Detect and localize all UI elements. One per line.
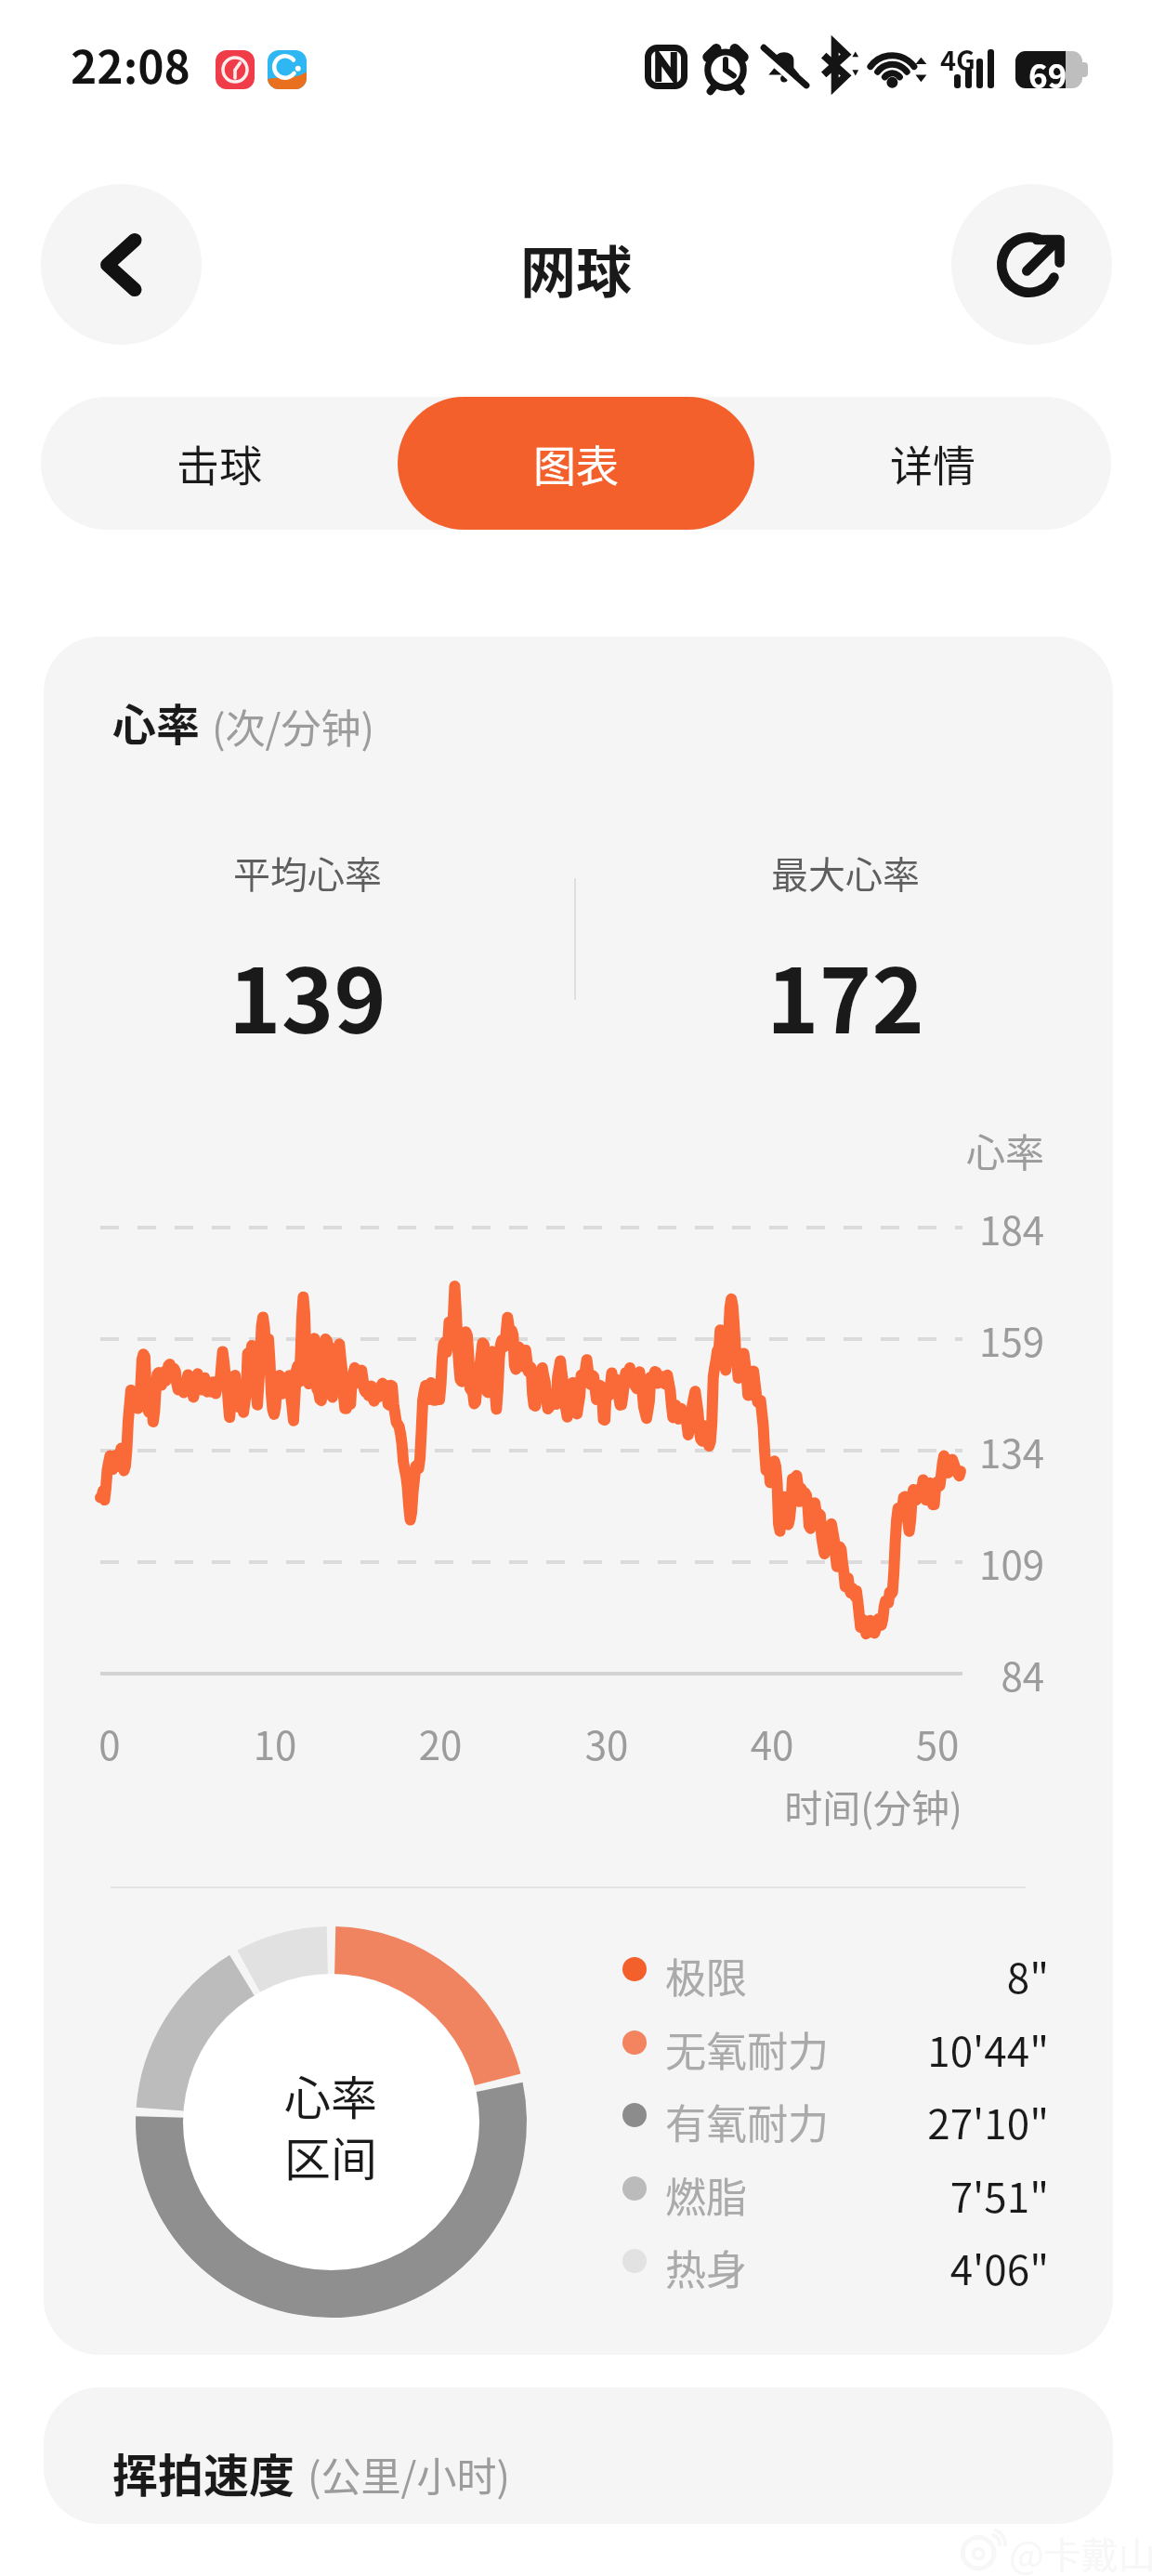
staticText: 8" [768, 1946, 1049, 2005]
staticText: 无氧耐力 [665, 2019, 829, 2079]
staticText: 10 [219, 1715, 331, 1771]
staticText: 图表 [533, 432, 619, 494]
staticText: 7'51" [768, 2165, 1049, 2225]
staticText: @卡戴山= [1009, 2526, 1152, 2576]
button[interactable]: Share [951, 184, 1112, 345]
staticText: 有氧耐力 [665, 2092, 829, 2151]
staticText: 网球 [520, 228, 632, 309]
staticText: 109 [894, 1534, 1044, 1591]
staticText: 详情 [890, 432, 975, 494]
button[interactable]: Back [41, 184, 202, 345]
staticText: 139 [182, 930, 433, 1059]
staticText: 0 [54, 1715, 165, 1771]
staticText: 4G [940, 39, 975, 78]
staticText: 10'44" [768, 2019, 1049, 2079]
staticText: 184 [894, 1200, 1044, 1256]
staticText: (公里/小时) [308, 2445, 510, 2503]
staticText: 心率 [894, 1122, 1044, 1178]
staticText: 27'10" [768, 2092, 1049, 2151]
staticText: 4'06" [768, 2238, 1049, 2297]
staticText: 心率 [191, 2061, 470, 2128]
staticText: (次/分钟) [212, 697, 374, 755]
staticText: 挥拍速度 [112, 2439, 295, 2505]
staticText: 击球 [177, 432, 262, 494]
staticText: 30 [551, 1715, 662, 1771]
staticText: 时间(分钟) [739, 1778, 1008, 1833]
staticText: 热身 [665, 2238, 747, 2297]
staticText: 极限 [665, 1946, 747, 2005]
button[interactable]: 击球 [41, 397, 398, 530]
staticText: 心率 [112, 690, 200, 753]
staticText: 69 [1028, 50, 1067, 98]
staticText: 22:08 [71, 32, 190, 97]
staticText: 40 [716, 1715, 828, 1771]
staticText: 燃脂 [665, 2165, 747, 2225]
staticText: 84 [894, 1646, 1044, 1702]
staticText: 50 [882, 1715, 993, 1771]
staticText: 最大心率 [720, 846, 971, 900]
staticText: 172 [720, 930, 971, 1059]
staticText: 区间 [191, 2123, 470, 2189]
staticText: 平均心率 [182, 846, 433, 900]
staticText: 20 [385, 1715, 496, 1771]
button[interactable]: 详情 [754, 397, 1111, 530]
button[interactable]: 图表 [398, 397, 754, 530]
staticText: 134 [894, 1423, 1044, 1479]
staticText: 159 [894, 1311, 1044, 1368]
